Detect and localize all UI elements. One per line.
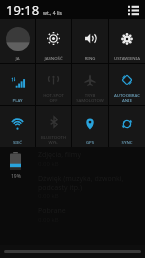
staticText: HOT-SPOT OFF — [36, 92, 71, 103]
button[interactable]: AUTOOBRAC ANIE — [109, 64, 145, 105]
button[interactable]: PLAY — [0, 64, 35, 105]
button[interactable]: BLUETOOTH WYŁ. — [36, 106, 71, 147]
staticText: RING — [72, 55, 108, 61]
button[interactable]: SYNC — [109, 106, 145, 147]
button[interactable]: GPS — [72, 106, 108, 147]
staticText: JA — [0, 55, 35, 61]
staticText: GPS — [72, 139, 108, 145]
staticText: USTAWIENIA — [109, 55, 145, 61]
button[interactable]: Battery 19 percent — [10, 152, 21, 180]
staticText: Pobrane — [38, 206, 66, 216]
staticText: TRYB SAMOLOTOW — [72, 92, 108, 103]
button[interactable]: JA — [0, 19, 35, 63]
staticText: JASNOŚĆ — [36, 55, 71, 61]
button[interactable]: Notifications — [126, 3, 140, 17]
staticText: wt., 4 lis — [43, 10, 62, 17]
button[interactable]: SIEĆ — [0, 106, 35, 147]
staticText: BLUETOOTH WYŁ. — [36, 134, 71, 145]
staticText: PLAY — [0, 97, 35, 103]
staticText: SIEĆ — [0, 139, 35, 145]
staticText: 19% — [11, 173, 21, 180]
staticText: SYNC — [109, 139, 145, 145]
staticText: 19:18 — [6, 1, 40, 19]
button[interactable]: RING — [72, 19, 108, 63]
button[interactable]: USTAWIENIA — [109, 19, 145, 63]
button[interactable]: TRYB SAMOLOTOW — [72, 64, 108, 105]
staticText: AUTOOBRAC ANIE — [109, 92, 145, 103]
button[interactable]: JASNOŚĆ — [36, 19, 71, 63]
button[interactable]: HOT-SPOT OFF — [36, 64, 71, 105]
button[interactable]: Close quick settings — [0, 245, 145, 258]
